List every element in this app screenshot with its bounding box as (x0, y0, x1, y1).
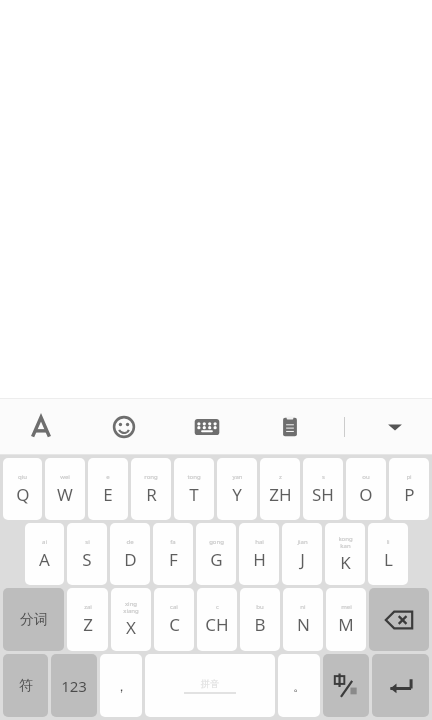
button[interactable]: ni (283, 588, 323, 651)
staticText: R (146, 483, 157, 506)
button[interactable]: Enter (372, 654, 429, 717)
button[interactable]: rong (131, 458, 171, 520)
staticText: E (103, 483, 113, 506)
staticText: A (39, 548, 50, 571)
staticText: CH (205, 613, 229, 636)
staticText: cai (170, 603, 178, 611)
staticText: L (384, 548, 393, 571)
staticText: W (57, 483, 73, 506)
staticText: li (386, 538, 390, 546)
staticText: e (106, 473, 110, 481)
staticText: T (189, 483, 199, 506)
button[interactable]: jian (282, 523, 322, 585)
staticText: 分词 (20, 611, 48, 629)
staticText: ai (42, 538, 47, 546)
button[interactable]: ou (346, 458, 386, 520)
staticText: N (297, 613, 310, 636)
staticText: fa (170, 538, 176, 546)
staticText: s (322, 473, 325, 481)
staticText: si (85, 538, 90, 546)
button[interactable]: ai (25, 523, 64, 585)
button[interactable]: pi (389, 458, 429, 520)
button[interactable]: c (197, 588, 237, 651)
button[interactable]: 符 (3, 654, 48, 717)
button[interactable]: hai (239, 523, 279, 585)
button[interactable]: Space (145, 654, 275, 717)
staticText: kong kan (338, 535, 353, 549)
staticText: ni (300, 603, 306, 611)
staticText: pi (406, 473, 412, 481)
staticText: z (279, 473, 282, 481)
button[interactable]: Switch Chinese English (323, 654, 369, 717)
button[interactable]: xing xiang (111, 588, 151, 651)
staticText: O (359, 483, 373, 506)
staticText: 。 (293, 678, 306, 694)
staticText: 123 (61, 676, 87, 696)
staticText: Y (232, 483, 242, 506)
button[interactable]: ， (100, 654, 142, 717)
staticText: jian (297, 538, 308, 546)
staticText: G (210, 548, 223, 571)
button[interactable]: z (260, 458, 300, 520)
button[interactable]: s (303, 458, 343, 520)
button[interactable]: tong (174, 458, 214, 520)
staticText: zai (84, 603, 92, 611)
staticText: c (216, 603, 219, 611)
button[interactable]: yan (217, 458, 257, 520)
staticText: Q (16, 483, 30, 506)
staticText: gong (209, 538, 224, 546)
staticText: hai (255, 538, 264, 546)
button[interactable]: si (67, 523, 107, 585)
button[interactable]: qiu (3, 458, 42, 520)
button[interactable]: de (110, 523, 150, 585)
button[interactable]: Clipboard (248, 399, 331, 454)
staticText: B (254, 613, 266, 636)
button[interactable]: mei (326, 588, 366, 651)
button[interactable]: kong kan (325, 523, 365, 585)
staticText: M (338, 613, 354, 636)
staticText: ， (115, 678, 128, 694)
staticText: ou (362, 473, 370, 481)
button[interactable]: 。 (278, 654, 320, 717)
button[interactable]: li (368, 523, 408, 585)
staticText: Z (83, 613, 93, 636)
staticText: C (169, 613, 180, 636)
staticText: 符 (19, 677, 33, 695)
staticText: SH (312, 483, 334, 506)
button[interactable]: cai (154, 588, 194, 651)
button[interactable]: e (88, 458, 128, 520)
staticText: qiu (18, 473, 27, 481)
staticText: rong (144, 473, 158, 481)
staticText: 拼音 (201, 678, 219, 689)
staticText: tong (187, 473, 201, 481)
button[interactable]: fa (153, 523, 193, 585)
staticText: K (340, 551, 351, 574)
button[interactable]: Backspace (369, 588, 429, 651)
button[interactable]: gong (196, 523, 236, 585)
staticText: F (169, 548, 178, 571)
staticText: S (82, 548, 92, 571)
button[interactable]: Emoji (82, 399, 165, 454)
button[interactable]: wei (45, 458, 85, 520)
staticText: H (253, 548, 266, 571)
staticText: ZH (269, 483, 292, 506)
button[interactable]: bu (240, 588, 280, 651)
staticText: mei (341, 603, 352, 611)
staticText: de (126, 538, 134, 546)
staticText: D (124, 548, 137, 571)
staticText: P (404, 483, 415, 506)
staticText: wei (60, 473, 70, 481)
button[interactable]: Hide keyboard (357, 399, 432, 454)
button[interactable]: 分词 (3, 588, 64, 651)
button[interactable]: 123 (51, 654, 97, 717)
staticText: bu (256, 603, 264, 611)
staticText: J (300, 548, 305, 571)
staticText: xing xiang (123, 600, 139, 614)
button[interactable]: Text style (0, 399, 82, 454)
staticText: yan (232, 473, 243, 481)
button[interactable]: zai (67, 588, 108, 651)
button[interactable]: Keyboard layout (165, 399, 248, 454)
staticText: X (126, 616, 136, 639)
